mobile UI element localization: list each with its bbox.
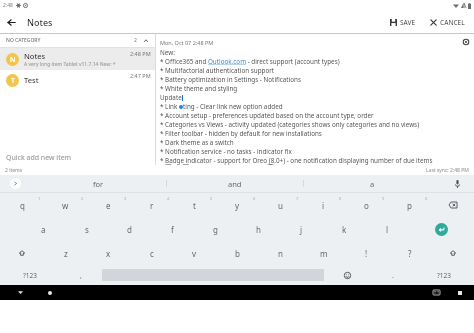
button[interactable]: Back bbox=[12, 285, 28, 300]
button[interactable]: r bbox=[130, 193, 173, 217]
staticText: . bbox=[392, 271, 394, 280]
staticText: c bbox=[150, 248, 154, 259]
staticText: y bbox=[235, 200, 240, 211]
staticText: * Office365 and Outlook.com - direct sup… bbox=[160, 57, 340, 66]
staticText: t bbox=[193, 200, 196, 211]
button[interactable]: m bbox=[302, 241, 345, 265]
staticText: 2:47 PM bbox=[130, 72, 151, 79]
button[interactable]: ? bbox=[388, 241, 431, 265]
button[interactable]: t bbox=[173, 193, 216, 217]
staticText: j bbox=[300, 224, 303, 235]
staticText: g bbox=[213, 224, 218, 235]
button[interactable]: ?123 bbox=[414, 265, 474, 285]
staticText: b bbox=[235, 248, 240, 259]
button[interactable]: l bbox=[366, 217, 409, 241]
button[interactable]: q bbox=[0, 193, 44, 217]
button[interactable]: n bbox=[259, 241, 302, 265]
button[interactable]: w bbox=[44, 193, 87, 217]
staticText: SAVE bbox=[400, 18, 416, 27]
button[interactable]: Shift bbox=[0, 241, 44, 265]
staticText: k bbox=[342, 224, 347, 235]
button[interactable]: y bbox=[216, 193, 259, 217]
button[interactable]: , bbox=[59, 265, 102, 285]
button[interactable]: i bbox=[302, 193, 345, 217]
button[interactable]: v bbox=[173, 241, 216, 265]
staticText: l bbox=[386, 224, 389, 235]
button[interactable]: o bbox=[345, 193, 388, 217]
staticText: * Categories vs Views - activity updated… bbox=[160, 120, 420, 129]
button[interactable]: ! bbox=[345, 241, 388, 265]
button[interactable]: e bbox=[87, 193, 130, 217]
staticText: Test bbox=[24, 75, 39, 85]
staticText: u bbox=[278, 200, 283, 211]
staticText: n bbox=[278, 248, 283, 259]
button[interactable]: SAVE bbox=[385, 15, 421, 30]
button[interactable]: Enter bbox=[409, 217, 474, 241]
button[interactable]: CANCEL bbox=[425, 15, 470, 30]
button[interactable]: f bbox=[151, 217, 194, 241]
button[interactable]: z bbox=[44, 241, 87, 265]
staticText: New: bbox=[160, 48, 175, 57]
staticText: 8 bbox=[339, 196, 342, 201]
button[interactable]: Hide keyboard bbox=[428, 285, 444, 300]
button[interactable]: Home bbox=[42, 285, 58, 300]
button[interactable]: h bbox=[237, 217, 280, 241]
button[interactable]: Quick add new item bbox=[0, 153, 155, 165]
staticText: NO CATEGORY bbox=[6, 37, 41, 44]
button[interactable]: u bbox=[259, 193, 302, 217]
button[interactable]: g bbox=[194, 217, 237, 241]
staticText: * White theme and styling bbox=[160, 84, 238, 93]
button[interactable]: Shift bbox=[431, 241, 474, 265]
button[interactable]: x bbox=[87, 241, 130, 265]
button[interactable]: p bbox=[388, 193, 431, 217]
button[interactable]: for bbox=[30, 175, 166, 192]
staticText: Notes bbox=[24, 51, 46, 61]
staticText: Update bbox=[160, 93, 182, 102]
staticText: a bbox=[41, 224, 46, 235]
button[interactable]: Emoji bbox=[324, 265, 371, 285]
staticText: i bbox=[322, 200, 325, 211]
staticText: z bbox=[64, 248, 68, 259]
staticText: 4 bbox=[167, 196, 170, 201]
button[interactable]: and bbox=[167, 175, 303, 192]
button[interactable]: Backspace bbox=[431, 193, 474, 217]
staticText: d bbox=[127, 224, 132, 235]
button[interactable]: Back bbox=[0, 11, 22, 33]
button[interactable]: Options bbox=[460, 36, 472, 48]
staticText: Last sync: 2:48 PM bbox=[426, 167, 469, 174]
staticText: 9 bbox=[382, 196, 385, 201]
staticText: s bbox=[85, 224, 89, 235]
button[interactable]: j bbox=[280, 217, 323, 241]
staticText: * Notification service - no tasks - indi… bbox=[160, 147, 292, 156]
staticText: * Filter toolbar - hidden by default for… bbox=[160, 129, 322, 138]
staticText: * Badge indicator - support for Oreo (8.… bbox=[160, 156, 433, 165]
button[interactable]: k bbox=[323, 217, 366, 241]
button[interactable]: Expand suggestions bbox=[0, 175, 30, 192]
staticText: ! bbox=[365, 248, 368, 259]
staticText: 1 bbox=[38, 196, 41, 201]
button[interactable]: a bbox=[304, 175, 440, 192]
button[interactable]: d bbox=[108, 217, 151, 241]
button[interactable]: a bbox=[22, 217, 65, 241]
button[interactable]: T bbox=[0, 70, 155, 90]
button[interactable]: s bbox=[65, 217, 108, 241]
staticText: ?123 bbox=[23, 271, 37, 280]
staticText: Quick add new item bbox=[6, 153, 72, 163]
button[interactable]: Recent apps bbox=[452, 285, 468, 300]
button[interactable]: ?123 bbox=[0, 265, 59, 285]
staticText: Notes bbox=[27, 16, 53, 28]
staticText: and bbox=[228, 179, 242, 189]
button[interactable]: b bbox=[216, 241, 259, 265]
staticText: Mon, Oct 07 2:48 PM bbox=[160, 39, 214, 46]
button[interactable]: c bbox=[130, 241, 173, 265]
button[interactable]: Voice input bbox=[440, 175, 474, 192]
button[interactable]: N bbox=[0, 48, 155, 70]
staticText: CANCEL bbox=[440, 18, 465, 27]
staticText: * Account setup - preferences updated ba… bbox=[160, 111, 374, 120]
button[interactable]: NO CATEGORY bbox=[0, 34, 155, 47]
staticText: 2 items bbox=[5, 167, 23, 174]
staticText: N bbox=[10, 55, 16, 65]
staticText: * Battery optimization in Settings - Not… bbox=[160, 75, 301, 84]
